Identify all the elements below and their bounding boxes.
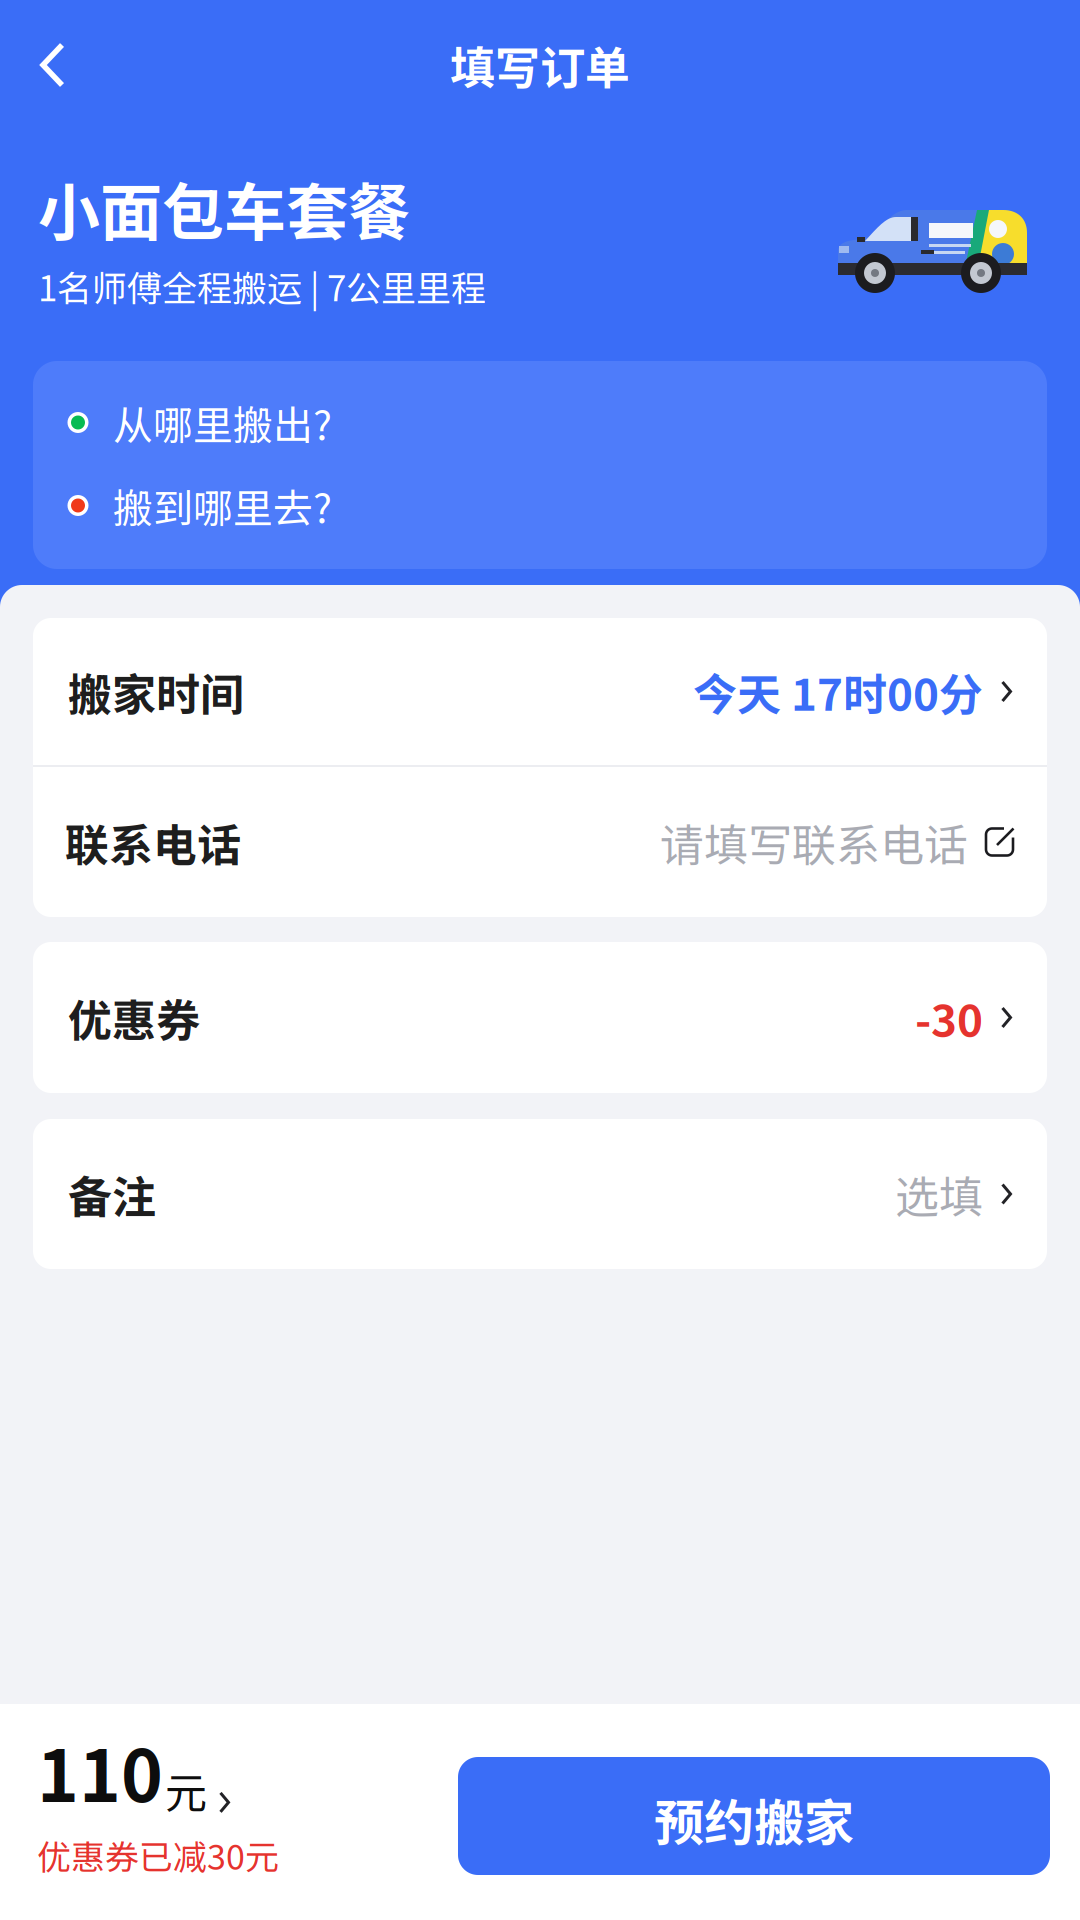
staticText: 从哪里搬出?	[113, 393, 332, 451]
staticText: 搬家时间	[68, 660, 244, 723]
staticText: 选填	[895, 1162, 983, 1226]
staticText: 元	[165, 1760, 207, 1820]
button[interactable]: 110	[0, 1744, 303, 1880]
staticText: 搬到哪里去?	[113, 476, 332, 534]
staticText: 联系电话	[65, 810, 241, 874]
button[interactable]: 搬家时间	[33, 618, 1047, 765]
staticText: 110	[37, 1720, 163, 1822]
button[interactable]: 搬到哪里去?	[33, 464, 1047, 547]
staticText: 今天 17时00分	[693, 660, 983, 723]
staticText: 优惠券已减30元	[37, 1830, 279, 1880]
staticText: 填写订单	[450, 32, 630, 98]
button[interactable]: 从哪里搬出?	[33, 381, 1047, 464]
staticText: 备注	[68, 1162, 156, 1226]
staticText: 小面包车套餐	[38, 163, 410, 253]
staticText: 优惠券	[68, 986, 200, 1049]
staticText: 预约搬家	[654, 1783, 854, 1856]
staticText: 请填写联系电话	[660, 810, 968, 874]
staticText: -30	[915, 986, 983, 1049]
staticText: 1名师傅全程搬运 | 7公里里程	[38, 261, 486, 311]
button[interactable]: 返回	[0, 20, 95, 110]
button[interactable]: 联系电话	[33, 767, 1047, 917]
button[interactable]: 备注	[33, 1119, 1047, 1269]
button[interactable]: 优惠券	[33, 942, 1047, 1093]
button[interactable]: 预约搬家	[458, 1757, 1050, 1875]
